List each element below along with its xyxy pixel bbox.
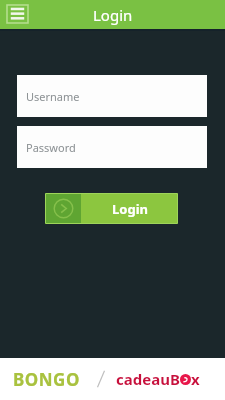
button[interactable]: Login <box>45 193 178 224</box>
staticText: cadeauB <box>116 369 180 389</box>
staticText: Login <box>93 5 133 25</box>
button[interactable]: cadeauB <box>116 369 200 389</box>
staticText: Password <box>26 140 76 155</box>
button[interactable]: Open navigation menu <box>7 5 28 23</box>
staticText: BONGO <box>13 368 80 391</box>
button[interactable]: BONGO <box>13 368 80 391</box>
staticText: Username <box>26 89 80 104</box>
button[interactable]: Password <box>17 126 207 168</box>
staticText: Login <box>112 200 148 218</box>
staticText: x <box>191 369 200 389</box>
button[interactable]: Username <box>17 75 207 117</box>
